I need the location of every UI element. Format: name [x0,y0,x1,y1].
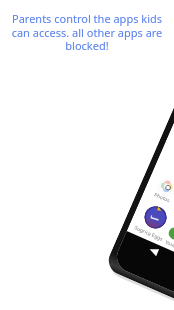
button[interactable]: Photos [146,188,174,207]
staticText: Yout [154,234,174,254]
button[interactable]: Yout [154,234,174,254]
button[interactable]: Sugrica Eggs [132,224,165,243]
staticText: Parents control the apps kids can access… [7,11,167,53]
staticText: Sugrica Eggs [132,224,165,243]
button[interactable]: Photos [155,174,174,199]
button[interactable]: Yout [167,225,174,241]
button[interactable]: Sugrica Eggs [141,203,170,232]
button[interactable]: Back [148,245,159,257]
staticText: Photos [146,188,174,207]
